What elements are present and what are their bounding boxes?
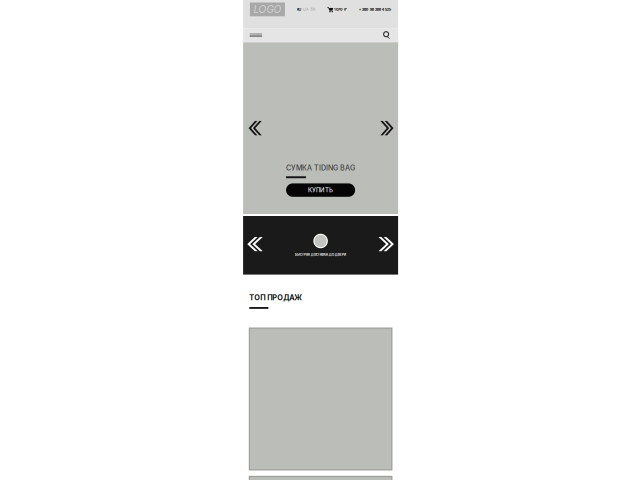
button[interactable]: UA	[303, 7, 309, 12]
button[interactable]: EN	[311, 7, 316, 12]
button[interactable]: Next	[378, 237, 394, 251]
staticText: БЫСТРАЯ ДОСТАВКА ДО ДВЕРИ	[295, 253, 346, 256]
button[interactable]: RU	[297, 7, 302, 12]
staticText: EN	[311, 7, 316, 12]
button[interactable]: КУПИТЬ	[286, 183, 355, 197]
button[interactable]: Search	[384, 32, 390, 39]
button[interactable]: Product	[249, 328, 392, 470]
button[interactable]: Next slide	[380, 121, 393, 135]
button[interactable]: Cart	[327, 6, 347, 12]
staticText: LOGO	[253, 3, 281, 15]
button[interactable]: Product	[249, 476, 392, 480]
staticText: КУПИТЬ	[308, 186, 333, 194]
staticText: +380 98 388 4525	[359, 7, 391, 12]
staticText: UA	[303, 7, 309, 12]
staticText: СУМКА TIDING BAG	[286, 163, 355, 172]
staticText: RU	[297, 7, 302, 12]
button[interactable]: Previous slide	[249, 121, 262, 135]
button[interactable]: Previous	[247, 237, 263, 251]
button[interactable]: Menu	[250, 33, 262, 37]
staticText: ТОП ПРОДАЖ	[249, 293, 302, 302]
staticText: 1070 ₽	[334, 7, 347, 12]
button[interactable]: Logo	[250, 2, 285, 16]
button[interactable]: +380 98 388 4525	[359, 7, 391, 12]
